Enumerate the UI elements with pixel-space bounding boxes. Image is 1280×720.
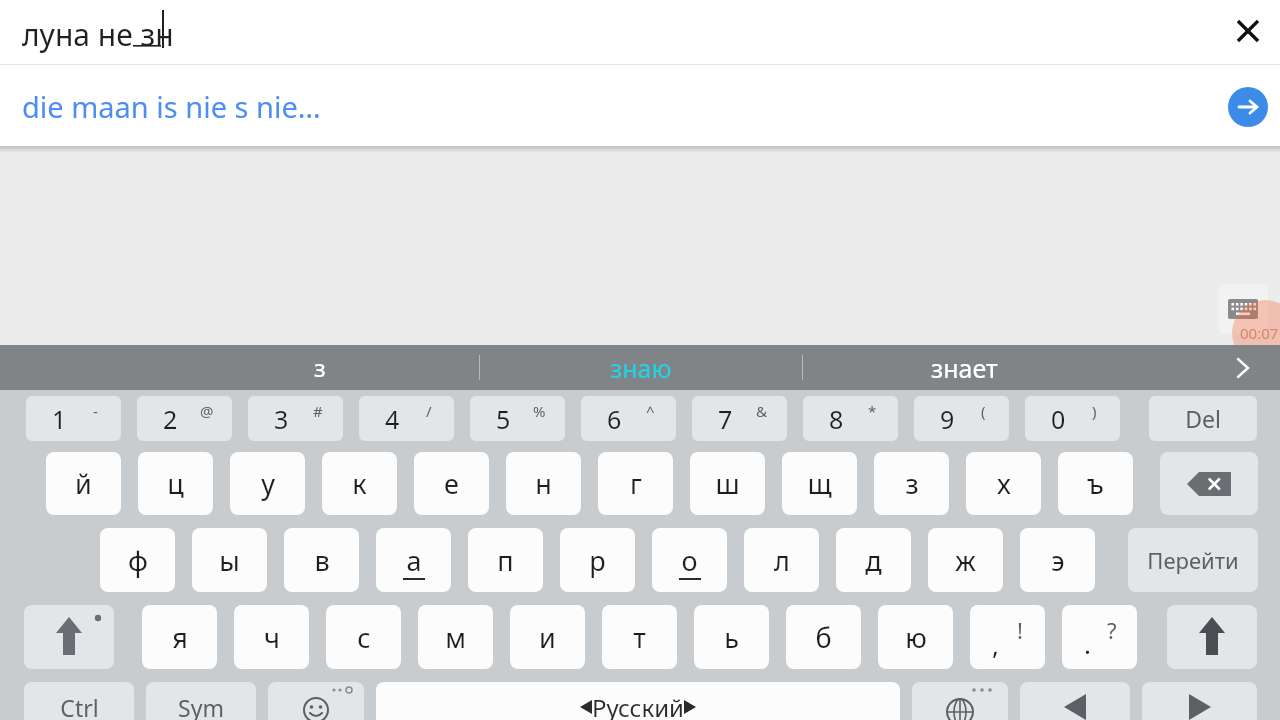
button[interactable]: Del [1149,396,1257,441]
staticText: % [533,401,546,421]
button[interactable]: Key я [142,605,217,669]
staticText: Ctrl [60,692,99,720]
button[interactable]: Key ж [928,528,1003,592]
button[interactable]: Key х [966,452,1041,515]
staticText: ? [1107,615,1117,645]
staticText: н [535,465,552,502]
staticText: луна не зн [22,14,174,55]
button[interactable]: Key л [744,528,819,592]
staticText: ю [905,619,927,656]
button[interactable]: Key ц [138,452,213,515]
staticText: з [905,465,919,502]
button[interactable]: Period [1062,605,1137,669]
button[interactable]: Key 7 [692,396,787,441]
button[interactable]: die maan is nie s nie… [0,65,1180,145]
button[interactable]: Key д [836,528,911,592]
button[interactable]: Key п [468,528,543,592]
button[interactable]: Key о [652,528,727,592]
staticText: щ [807,465,832,502]
staticText: знаю [610,351,672,385]
staticText: знает [931,351,998,385]
button[interactable]: з [160,345,480,390]
button[interactable]: знаю [480,345,802,390]
button[interactable]: Shift right [1167,605,1257,669]
staticText: б [815,619,832,656]
button[interactable]: Key ю [878,605,953,669]
button[interactable]: Sym [146,682,256,720]
staticText: 1 [52,402,67,436]
staticText: 5 [496,402,511,436]
button[interactable]: Key 5 [470,396,565,441]
staticText: 3 [274,402,289,436]
staticText: у [261,465,275,502]
staticText: / [426,401,432,421]
button[interactable]: Key 9 [914,396,1009,441]
button[interactable]: Key в [284,528,359,592]
staticText: & [756,401,767,421]
button[interactable]: Backspace [1160,452,1258,515]
button[interactable]: More suggestions [1215,345,1270,390]
button[interactable]: Shift [24,605,114,669]
button[interactable]: Key к [322,452,397,515]
button[interactable]: Key 4 [359,396,454,441]
button[interactable]: Right [1142,682,1257,720]
staticText: 6 [607,402,622,436]
staticText: о [681,542,698,579]
button[interactable]: Перейти [1128,528,1258,592]
staticText: р [589,542,606,579]
button[interactable]: Key р [560,528,635,592]
button[interactable]: Left [1020,682,1130,720]
staticText: Русский [592,691,684,720]
button[interactable]: Ctrl [24,682,134,720]
button[interactable]: Key 0 [1025,396,1120,441]
button[interactable]: Submit [1228,87,1268,127]
button[interactable]: Key ш [690,452,765,515]
button[interactable]: Key ь [694,605,769,669]
staticText: ч [264,619,280,656]
staticText: Del [1185,403,1221,434]
staticText: . [1084,626,1091,661]
button[interactable]: Space [376,682,900,720]
button[interactable]: Key ч [234,605,309,669]
staticText: Sym [178,692,224,720]
button[interactable]: Close [1224,7,1272,55]
button[interactable]: Key 1 [26,396,121,441]
button[interactable]: Comma [970,605,1045,669]
staticText: 2 [163,402,178,436]
staticText: з [314,351,326,384]
button[interactable]: Key 6 [581,396,676,441]
staticText: ) [1092,401,1097,421]
button[interactable]: Key и [510,605,585,669]
button[interactable]: Emoji [268,682,364,720]
staticText: * [868,401,877,421]
button[interactable]: Key е [414,452,489,515]
staticText: л [774,542,790,579]
button[interactable]: Key а [376,528,451,592]
staticText: 00:07 [1240,323,1279,343]
button[interactable]: Key б [786,605,861,669]
staticText: с [357,619,371,656]
button[interactable]: Key м [418,605,493,669]
button[interactable]: Key с [326,605,401,669]
staticText: в [314,542,330,579]
button[interactable]: Key ъ [1058,452,1133,515]
button[interactable]: знает [803,345,1125,390]
button[interactable]: Key щ [782,452,857,515]
button[interactable]: Key ф [100,528,175,592]
button[interactable]: Key н [506,452,581,515]
staticText: 8 [829,402,844,436]
staticText: ц [167,465,184,502]
button[interactable]: Key т [602,605,677,669]
button[interactable]: Show keyboard [1218,284,1268,334]
button[interactable]: Key 2 [137,396,232,441]
button[interactable]: Key у [230,452,305,515]
button[interactable]: Key й [46,452,121,515]
staticText: м [445,619,466,656]
button[interactable]: Key 8 [803,396,898,441]
button[interactable]: Change language [912,682,1008,720]
button[interactable]: Key з [874,452,949,515]
button[interactable]: Key ы [192,528,267,592]
button[interactable]: Key г [598,452,673,515]
button[interactable]: Key э [1020,528,1095,592]
button[interactable]: Key 3 [248,396,343,441]
